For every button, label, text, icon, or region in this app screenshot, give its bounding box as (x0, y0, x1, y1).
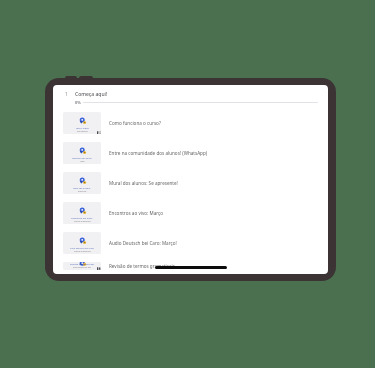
staticText: intermediárias em (73, 266, 92, 269)
staticText: introdução (77, 130, 88, 133)
staticText: Gramática em aulas (71, 217, 93, 220)
staticText: 1 (65, 91, 68, 97)
button[interactable]: Material em áudio (53, 138, 328, 168)
staticText: Revisão de termos ger (70, 263, 95, 266)
button[interactable]: Revisão de termos ger (53, 258, 328, 274)
staticText: Caro Deutsch bei Caro (70, 247, 95, 250)
staticText: 0% (75, 100, 81, 105)
staticText: Exportar (78, 190, 87, 193)
staticText: Entre na comunidade dos alunos! (WhatsAp… (109, 150, 208, 156)
staticText: Texto: vídeo (76, 127, 89, 130)
button[interactable]: Gramática em aulas (53, 198, 328, 228)
staticText: Mural dos alunos: Se apresente! (109, 180, 178, 186)
staticText: índice avançadas (74, 250, 91, 253)
staticText: Encontros ao vivo: Março (109, 210, 163, 216)
staticText: 09:48 (98, 131, 101, 134)
staticText: Mais vão acabar (73, 187, 91, 190)
button[interactable]: Mais vão acabar (53, 168, 328, 198)
staticText: Como funciona o curso? (109, 120, 161, 126)
staticText: Audio Deutsch bei Caro: Março! (109, 240, 177, 246)
staticText: Material em áudio (72, 157, 92, 160)
button[interactable]: Caro Deutsch bei Caro (53, 228, 328, 258)
button[interactable]: Texto: vídeo (53, 108, 328, 138)
staticText: Começa aqui! (75, 91, 108, 98)
button[interactable]: 1 (53, 88, 328, 108)
staticText: Revisão de termos gramaticais (109, 263, 175, 269)
staticText: índice avançadas (74, 220, 91, 223)
staticText: 17:08 (98, 267, 101, 270)
staticText: Mais (80, 160, 85, 163)
